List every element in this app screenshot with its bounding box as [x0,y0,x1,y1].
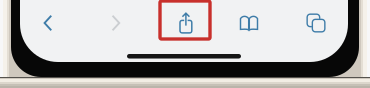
button[interactable]: Back [23,3,73,43]
button[interactable]: Bookmarks [224,3,274,43]
button[interactable]: Tabs [291,3,341,43]
button[interactable]: Forward [91,3,141,43]
button[interactable]: Share [161,3,211,43]
